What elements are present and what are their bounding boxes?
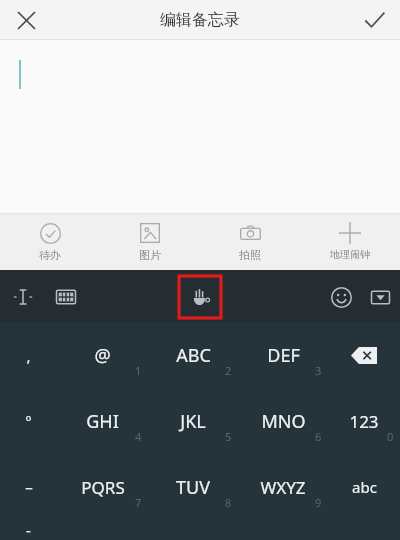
button[interactable]: ABC — [148, 323, 238, 388]
staticText: 0 — [387, 429, 394, 444]
staticText: JKL — [180, 409, 206, 434]
button[interactable]: Emoji — [322, 278, 360, 316]
button[interactable]: 图片 — [100, 213, 200, 270]
button[interactable]: GHI — [57, 388, 148, 454]
staticText: , — [26, 346, 31, 366]
staticText: 拍照 — [239, 248, 261, 262]
staticText: 待办 — [39, 248, 61, 262]
staticText: @ — [94, 343, 111, 368]
staticText: 123 — [349, 410, 379, 433]
button[interactable]: Keyboard layout — [47, 278, 85, 316]
staticText: 5 — [225, 429, 232, 444]
staticText: 1 — [135, 363, 142, 378]
button[interactable]: MNO — [238, 388, 328, 454]
button[interactable]: Close — [0, 0, 52, 40]
button[interactable]: @ — [57, 323, 148, 388]
button[interactable]: ° — [0, 388, 57, 454]
staticText: WXYZ — [260, 476, 306, 499]
button[interactable]: Handwriting input — [179, 276, 221, 318]
button[interactable]: JKL — [148, 388, 238, 454]
button[interactable]: WXYZ — [238, 454, 328, 520]
button[interactable]: 待办 — [0, 213, 100, 270]
button[interactable]: DEF — [238, 323, 328, 388]
staticText: 地理闹钟 — [330, 248, 370, 261]
button[interactable]: 拍照 — [200, 213, 300, 270]
button[interactable]: Hide keyboard — [361, 278, 399, 316]
staticText: 图片 — [139, 248, 161, 262]
staticText: 7 — [135, 495, 142, 510]
button[interactable]: - — [0, 520, 56, 540]
staticText: 8 — [225, 495, 232, 510]
staticText: ABC — [176, 343, 211, 368]
button[interactable]: Move cursor — [4, 278, 42, 316]
staticText: 2 — [225, 363, 232, 378]
staticText: ° — [25, 411, 32, 431]
other: Backspace — [328, 323, 400, 388]
staticText: 4 — [135, 429, 142, 444]
staticText: DEF — [267, 343, 300, 368]
button[interactable]: TUV — [148, 454, 238, 520]
button[interactable]: – — [0, 454, 57, 520]
staticText: GHI — [86, 409, 119, 434]
staticText: 编辑备忘录 — [160, 10, 240, 30]
staticText: abc — [352, 477, 377, 497]
staticText: TUV — [176, 475, 210, 500]
button[interactable]: Backspace — [328, 323, 400, 388]
staticText: – — [25, 477, 33, 497]
staticText: PQRS — [81, 476, 125, 499]
button[interactable]: 123 — [328, 388, 400, 454]
button[interactable]: Save — [348, 0, 400, 40]
staticText: 9 — [315, 495, 322, 510]
button[interactable]: 地理闹钟 — [300, 213, 400, 270]
staticText: - — [26, 520, 31, 540]
button[interactable]: , — [0, 323, 57, 388]
button[interactable]: abc — [328, 454, 400, 520]
staticText: MNO — [261, 409, 306, 434]
button[interactable]: PQRS — [57, 454, 148, 520]
staticText: 3 — [315, 363, 322, 378]
staticText: 6 — [315, 429, 322, 444]
